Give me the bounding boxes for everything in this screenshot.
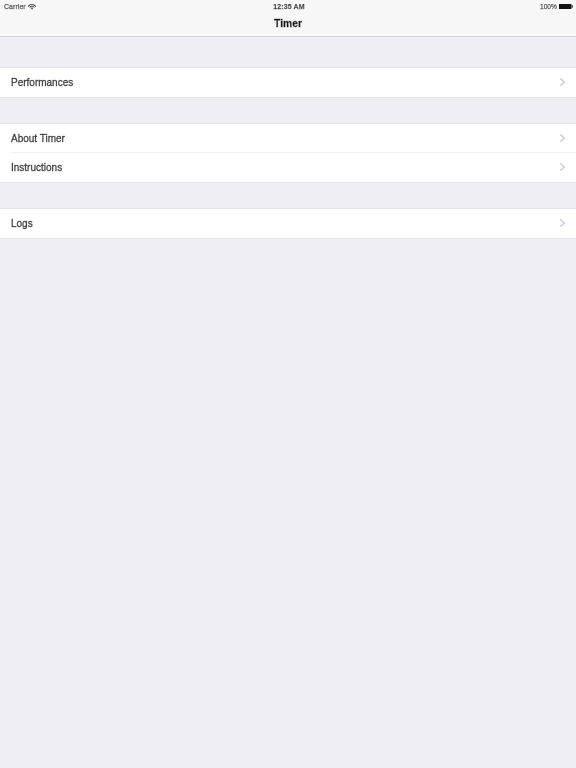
staticText: 12:35 AM	[1, 3, 576, 11]
staticText: Logs	[11, 218, 33, 229]
staticText: Instructions	[11, 162, 63, 173]
staticText: Carrier	[4, 3, 26, 11]
staticText: Performances	[11, 77, 74, 88]
button[interactable]: Logs	[0, 209, 576, 238]
staticText: About Timer	[11, 133, 65, 144]
other: Open Logs	[560, 219, 565, 227]
other: Open Instructions	[560, 163, 565, 171]
staticText: Timer	[0, 18, 576, 30]
staticText: Performances	[11, 77, 74, 88]
staticText: Timer	[0, 18, 576, 30]
staticText: About Timer	[11, 133, 65, 144]
other: Open Performances	[560, 78, 565, 86]
button[interactable]: Performances	[0, 68, 576, 97]
other: Open About Timer	[560, 134, 565, 142]
button[interactable]: About Timer	[0, 124, 576, 153]
staticText: Instructions	[11, 162, 63, 173]
button[interactable]: Instructions	[0, 153, 576, 182]
staticText: 12:35 AM	[1, 3, 576, 11]
staticText: 100%	[540, 3, 557, 10]
other: Battery full	[559, 4, 573, 9]
staticText: Carrier	[4, 3, 26, 11]
staticText: 100%	[540, 3, 557, 10]
staticText: Logs	[11, 218, 33, 229]
